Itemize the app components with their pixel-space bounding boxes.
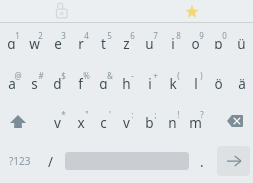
staticText: 1 [15,30,20,40]
staticText: g [99,75,108,89]
button[interactable]: 0 [207,22,230,62]
staticText: ?123 [9,154,31,168]
staticText: 7 [153,30,158,40]
staticText: $ [61,70,66,80]
button[interactable]: 9 [184,22,207,62]
staticText: w [29,35,40,49]
button[interactable]: ?123 [0,141,40,181]
staticText: d [53,75,62,89]
staticText: n [168,114,177,128]
staticText: x [77,114,85,128]
button[interactable]: Backspace [217,101,253,141]
button[interactable]: ö [207,62,230,102]
staticText: . [200,153,204,171]
staticText: ; [154,109,157,119]
staticText: ! [177,109,180,119]
staticText: e [54,35,62,49]
staticText: y [54,114,61,128]
staticText: ä [238,75,246,89]
button[interactable]: - [115,62,138,102]
staticText: 2 [38,30,43,40]
button[interactable]: " [69,101,92,141]
staticText: * [61,109,66,119]
button[interactable]: 2 [23,22,46,62]
staticText: l [194,75,198,89]
button[interactable]: ä [230,62,253,102]
staticText: - [131,70,134,80]
button[interactable]: ! [161,101,184,141]
button[interactable]: Favorite [182,1,202,21]
button[interactable]: $ [46,62,69,102]
staticText: s [31,75,38,89]
staticText: h [122,75,131,89]
button[interactable]: Unlock keyboard [52,1,72,21]
staticText: : [131,109,134,119]
button[interactable]: Enter [217,146,250,176]
staticText: c [100,114,107,128]
staticText: z [123,35,130,49]
staticText: o [191,35,200,49]
button[interactable]: 3 [46,22,69,62]
staticText: % [83,70,90,80]
staticText: 8 [176,30,181,40]
staticText: u [145,35,154,49]
button[interactable]: 8 [161,22,184,62]
staticText: ö [214,75,223,89]
button[interactable]: ? [184,101,207,141]
button[interactable]: 6 [115,22,138,62]
staticText: ( [177,70,180,80]
button[interactable]: 1 [0,22,23,62]
staticText: 3 [61,30,66,40]
staticText: + [153,70,158,80]
button[interactable]: % [69,62,92,102]
staticText: 4 [84,30,89,40]
button[interactable]: * [46,101,69,141]
staticText: q [7,35,16,49]
button[interactable]: : [115,101,138,141]
staticText: ) [200,70,203,80]
button[interactable]: @ [0,62,23,102]
button[interactable]: ; [138,101,161,141]
staticText: p [214,35,223,49]
button[interactable]: ) [184,62,207,102]
staticText: " [85,109,89,119]
staticText: ü [237,35,246,49]
staticText: / [48,153,54,171]
button[interactable]: 7 [138,22,161,62]
button[interactable]: + [138,62,161,102]
staticText: f [78,75,83,89]
staticText: 5 [107,30,112,40]
button[interactable]: & [92,62,115,102]
staticText: a [8,75,16,89]
staticText: m [189,114,202,128]
staticText: & [107,70,113,80]
staticText: v [123,114,130,128]
staticText: k [169,75,177,89]
staticText: i [171,35,175,49]
staticText: 6 [130,30,135,40]
button[interactable]: ü [230,22,253,62]
button[interactable]: ' [92,101,115,141]
button[interactable]: ( [161,62,184,102]
staticText: t [101,35,106,49]
button[interactable]: . [191,141,213,181]
button[interactable]: Shift [0,101,36,141]
staticText: # [38,70,44,80]
staticText: ? [200,109,204,119]
staticText: ' [109,109,111,119]
staticText: 0 [222,30,227,40]
staticText: r [78,35,84,49]
staticText: j [148,75,152,89]
staticText: 9 [199,30,204,40]
staticText: @ [14,70,22,80]
staticText: b [145,114,154,128]
button[interactable]: # [23,62,46,102]
button[interactable]: 5 [92,22,115,62]
button[interactable]: / [40,141,62,181]
button[interactable]: 4 [69,22,92,62]
